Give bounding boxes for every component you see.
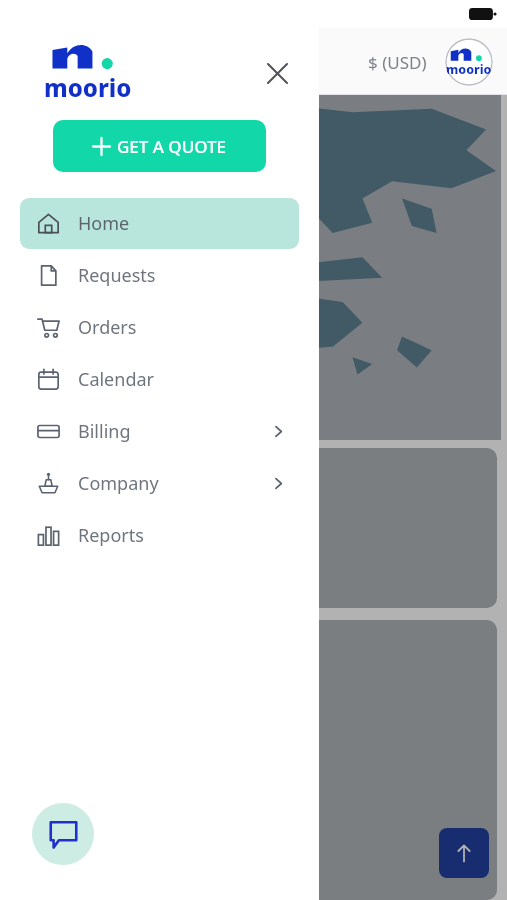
button[interactable]: Scroll to top xyxy=(439,828,489,878)
staticText: Take action xyxy=(28,474,150,505)
button[interactable]: Company xyxy=(20,458,299,509)
button[interactable]: Billing xyxy=(20,406,299,457)
staticText: Company xyxy=(78,471,159,496)
staticText: moorio xyxy=(446,61,492,78)
button[interactable]: GET A QUOTE xyxy=(53,120,266,172)
button[interactable]: Close menu xyxy=(255,51,299,95)
staticText: 3 days ago xyxy=(88,802,164,822)
staticText: Orders xyxy=(78,315,137,340)
staticText: Billing xyxy=(78,419,131,444)
staticText: moorio xyxy=(44,71,132,104)
button[interactable]: Chat xyxy=(32,803,94,865)
button[interactable]: Calendar xyxy=(20,354,299,405)
button[interactable]: Requests xyxy=(20,250,299,301)
button[interactable] xyxy=(28,523,248,571)
button[interactable]: Home xyxy=(20,198,299,249)
staticText: Reports xyxy=(78,523,144,548)
button[interactable]: Account xyxy=(445,38,493,86)
staticText: Home xyxy=(78,211,130,236)
button[interactable]: Reports xyxy=(20,510,299,561)
staticText: Requests xyxy=(78,263,156,288)
staticText: GET A QUOTE xyxy=(117,135,227,158)
button[interactable]: $ (USD) xyxy=(368,51,427,74)
staticText: Calendar xyxy=(78,367,154,392)
button[interactable]: Orders xyxy=(20,302,299,353)
